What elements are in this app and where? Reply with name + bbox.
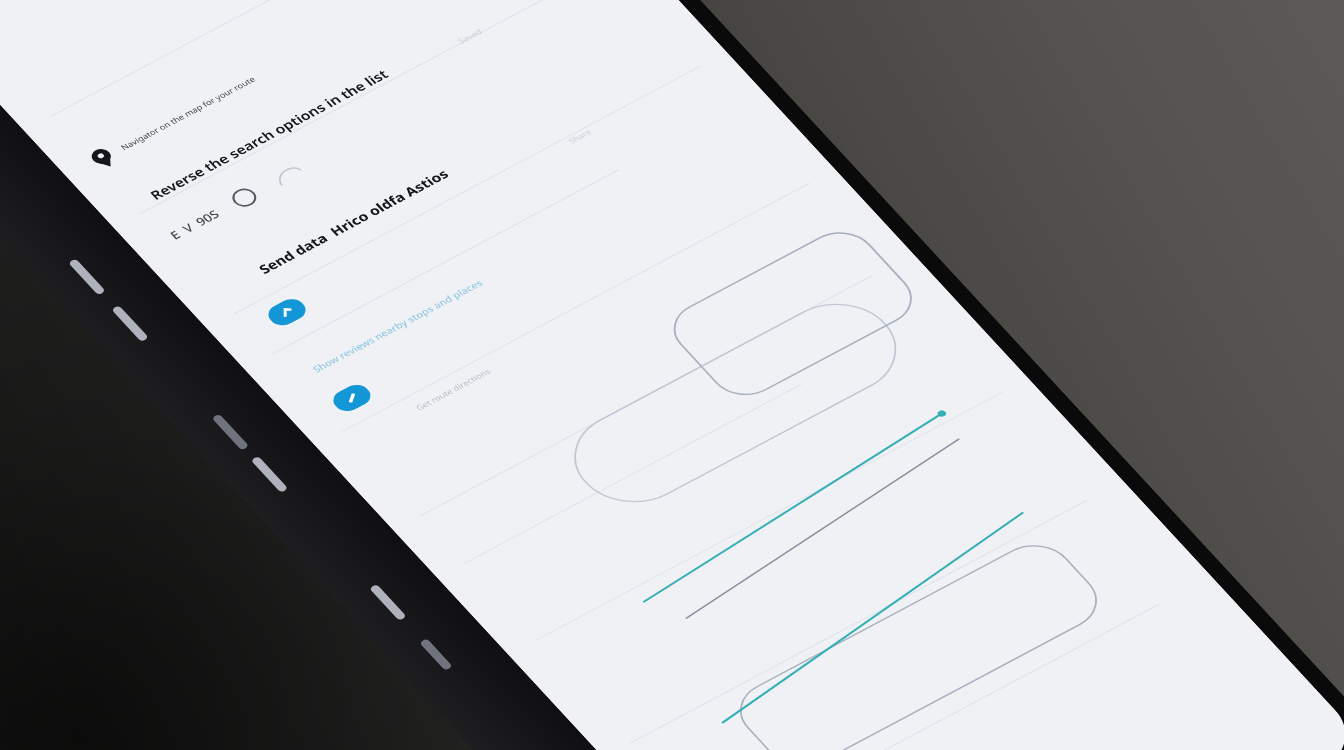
staticText: Saved [455, 26, 484, 46]
button[interactable] [691, 500, 1159, 750]
staticText: E V 90S [166, 206, 223, 243]
staticText: Share [566, 127, 594, 146]
button[interactable]: E V 90S [164, 159, 309, 244]
other: Location [87, 146, 119, 171]
staticText: Reverse the search options in the list [146, 66, 392, 203]
button[interactable] [552, 287, 918, 519]
other: Status [227, 185, 262, 211]
staticText: Show reviews nearby stops and places [310, 277, 486, 375]
button[interactable] [661, 222, 925, 405]
button[interactable]: Location [87, 70, 262, 171]
staticText: Navigator on the map for your route [118, 74, 258, 152]
button[interactable]: Show details on map [263, 295, 311, 329]
staticText: Send data Hrico oldfa Astios [254, 165, 452, 277]
button[interactable]: More options [328, 381, 376, 415]
staticText: Get route directions [413, 366, 493, 413]
